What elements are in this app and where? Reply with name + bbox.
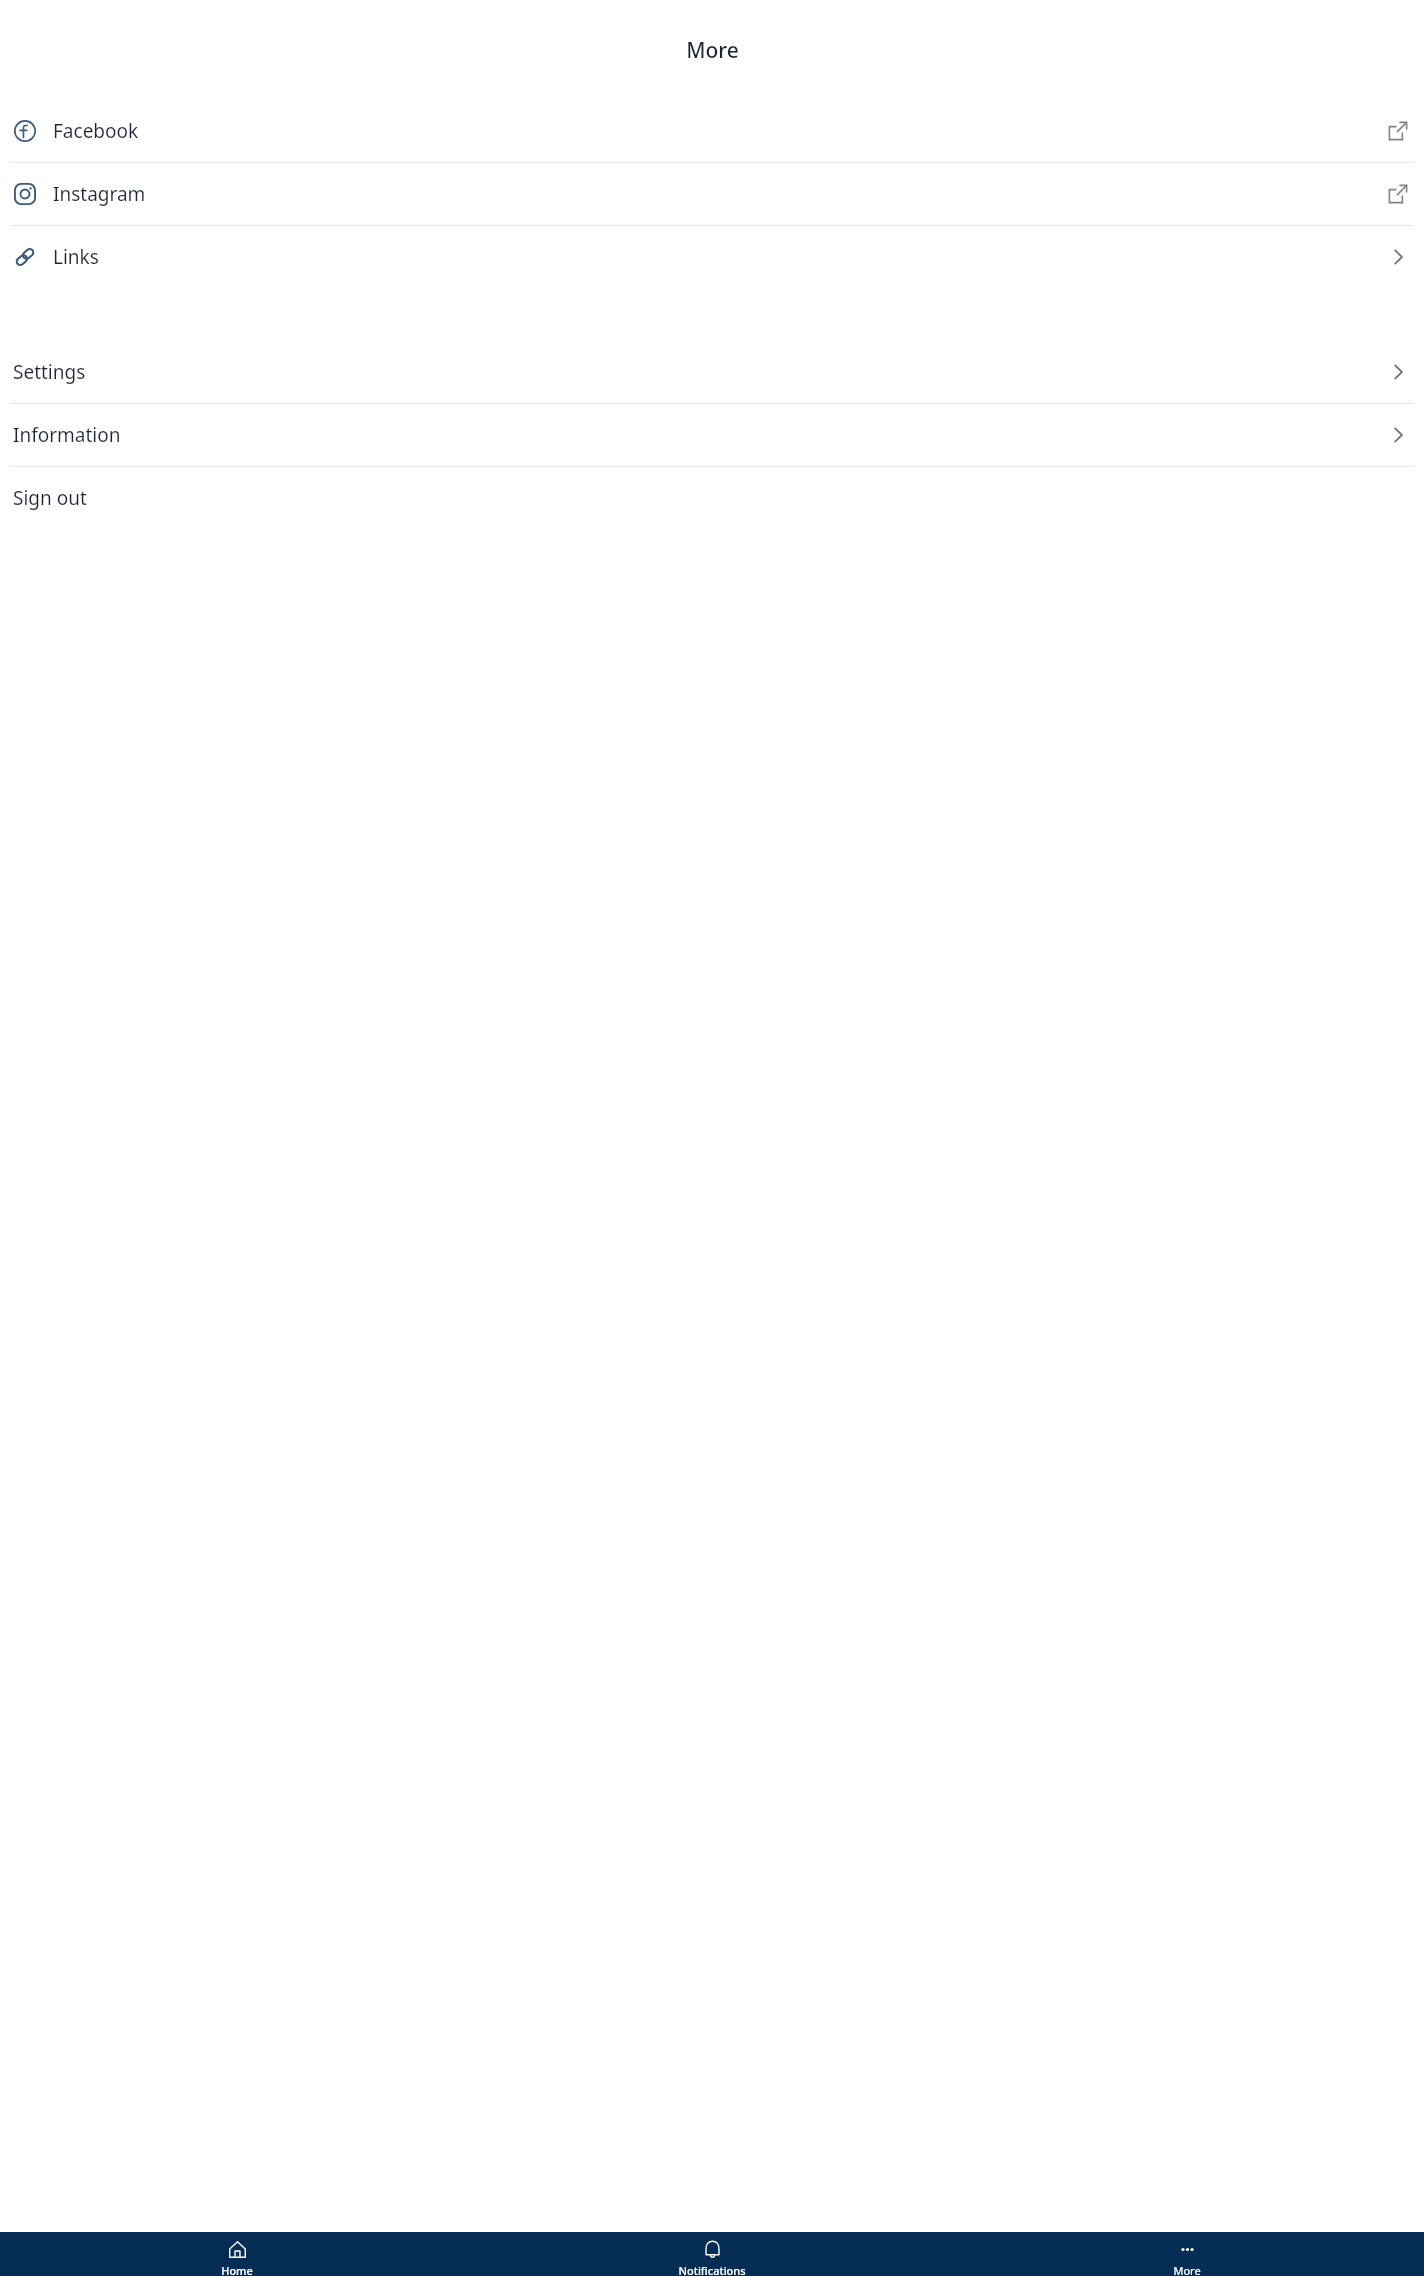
button[interactable]: Information	[0, 404, 1424, 466]
staticText: Links	[53, 244, 99, 270]
staticText: Home	[221, 2263, 253, 2276]
other: Open	[1383, 242, 1413, 272]
other: Open	[1383, 420, 1413, 450]
button[interactable]: Settings	[0, 341, 1424, 403]
staticText: Facebook	[53, 118, 139, 144]
button[interactable]: Notifications	[474, 2232, 949, 2276]
staticText: Instagram	[53, 181, 146, 207]
staticText: Notifications	[678, 2263, 746, 2276]
button[interactable]: Facebook	[0, 100, 1424, 162]
other: Open external link	[1383, 179, 1413, 209]
staticText: Sign out	[13, 485, 87, 511]
staticText: Settings	[13, 359, 86, 385]
other: Open	[1383, 357, 1413, 387]
button[interactable]: Sign out	[0, 467, 1424, 529]
staticText: More	[686, 36, 739, 65]
staticText: Information	[13, 422, 121, 448]
other: Open external link	[1383, 116, 1413, 146]
button[interactable]: More	[949, 2232, 1424, 2276]
button[interactable]: Instagram	[0, 163, 1424, 225]
staticText: More	[1173, 2263, 1201, 2276]
button[interactable]: Home	[0, 2232, 474, 2276]
button[interactable]: Links	[0, 226, 1424, 288]
